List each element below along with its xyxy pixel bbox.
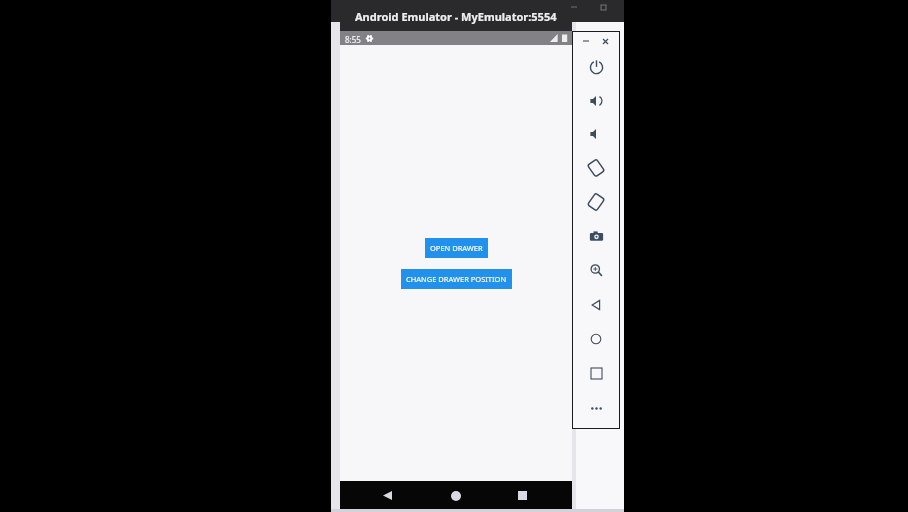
button[interactable]: Rotate right [579, 185, 613, 219]
button[interactable]: Power [579, 50, 613, 84]
button[interactable]: Volume up [579, 84, 613, 118]
button[interactable]: Close panel [597, 33, 613, 49]
button[interactable]: Rotate left [579, 151, 613, 185]
button[interactable]: OPEN DRAWER [425, 238, 488, 258]
button[interactable]: Volume down [579, 117, 613, 151]
staticText: Android Emulator - MyEmulator:5554 [355, 9, 557, 24]
button[interactable]: Zoom [579, 253, 613, 287]
button[interactable]: Maximize window [596, 0, 610, 14]
staticText: CHANGE DRAWER POSITION [406, 274, 507, 284]
button[interactable]: Home [579, 322, 613, 356]
button[interactable]: Home [442, 482, 469, 509]
button[interactable]: CHANGE DRAWER POSITION [401, 269, 512, 289]
button[interactable]: More [579, 391, 613, 425]
button[interactable]: Minimize window [567, 0, 581, 14]
button[interactable]: Recents [509, 482, 536, 509]
staticText: OPEN DRAWER [430, 243, 483, 253]
button[interactable]: Screenshot [579, 219, 613, 253]
button[interactable]: Back [579, 288, 613, 322]
button[interactable]: Back [374, 482, 401, 509]
button[interactable]: Minimize panel [578, 33, 594, 49]
button[interactable]: Overview [579, 356, 613, 390]
staticText: 8:55 [345, 34, 361, 45]
